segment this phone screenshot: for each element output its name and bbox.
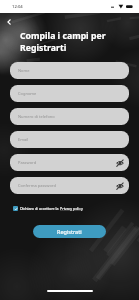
staticText: Privacy policy bbox=[60, 206, 83, 211]
staticText: Compila i campi per bbox=[20, 30, 106, 42]
staticText: Dichiaro di accettare la bbox=[20, 206, 60, 211]
button[interactable]: Conferma password bbox=[10, 177, 129, 194]
button[interactable]: Password bbox=[10, 154, 129, 171]
button[interactable]: Cognome bbox=[10, 85, 129, 102]
button[interactable]: Show password bbox=[116, 159, 124, 167]
button[interactable]: Back bbox=[2, 15, 16, 29]
button[interactable]: Email bbox=[10, 131, 129, 148]
staticText: 12:04 bbox=[12, 4, 23, 10]
staticText: Email bbox=[18, 137, 29, 142]
staticText: Registrati bbox=[57, 228, 82, 235]
button[interactable]: Dichiaro di accettare la bbox=[13, 206, 83, 211]
staticText: Password bbox=[18, 160, 37, 165]
staticText: Conferma password bbox=[18, 183, 56, 188]
staticText: Nome bbox=[18, 68, 30, 73]
staticText: Cognome bbox=[18, 91, 37, 96]
staticText: Registrarti bbox=[20, 42, 67, 54]
button[interactable]: Show password bbox=[116, 182, 124, 190]
button[interactable]: Nome bbox=[10, 62, 129, 79]
staticText: Numero di telefono bbox=[18, 114, 55, 119]
button[interactable]: Numero di telefono bbox=[10, 108, 129, 125]
button[interactable]: Registrati bbox=[33, 225, 106, 238]
